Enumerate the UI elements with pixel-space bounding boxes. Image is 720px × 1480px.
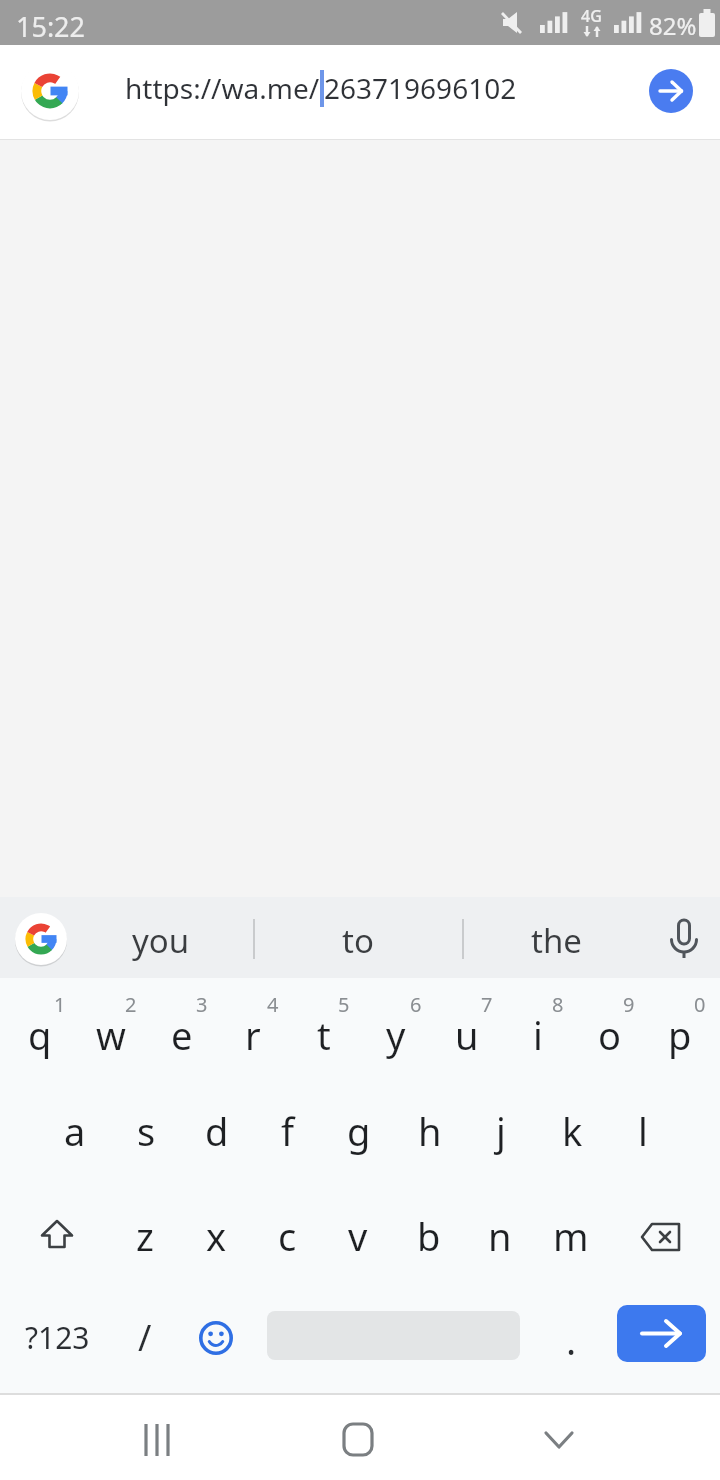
button[interactable]: d	[183, 1093, 251, 1169]
button[interactable]: g	[325, 1093, 393, 1169]
button[interactable]: .	[537, 1302, 605, 1378]
button[interactable]: f	[254, 1093, 322, 1169]
staticText: a	[64, 1105, 86, 1157]
staticText: 2	[125, 991, 137, 1018]
button[interactable]	[338, 1421, 378, 1461]
staticText: 263719696102	[324, 69, 517, 107]
staticText: the	[531, 918, 582, 963]
button[interactable]: p	[646, 997, 714, 1073]
staticText: 4G	[581, 5, 602, 27]
button[interactable]: x	[182, 1198, 250, 1274]
staticText: k	[562, 1105, 583, 1157]
staticText: p	[668, 1009, 692, 1061]
staticText: 0	[694, 991, 706, 1018]
button[interactable]: to	[310, 907, 406, 973]
button[interactable]: the	[492, 907, 621, 973]
button[interactable]: k	[538, 1093, 606, 1169]
staticText: s	[137, 1105, 156, 1157]
staticText: g	[347, 1105, 371, 1157]
staticText: .	[566, 1314, 577, 1366]
button[interactable]	[39, 1219, 75, 1255]
staticText: b	[417, 1210, 441, 1262]
staticText: u	[455, 1009, 479, 1061]
staticText: 4	[267, 991, 279, 1018]
staticText: w	[96, 1009, 126, 1061]
staticText: 3	[196, 991, 208, 1018]
button[interactable]: b	[395, 1198, 463, 1274]
button[interactable]: s	[112, 1093, 180, 1169]
staticText: v	[348, 1210, 368, 1262]
button[interactable]: m	[537, 1198, 605, 1274]
staticText: z	[136, 1210, 154, 1262]
staticText: r	[245, 1009, 261, 1061]
staticText: 15:22	[16, 8, 86, 45]
staticText: l	[638, 1105, 648, 1157]
button[interactable]	[649, 69, 693, 113]
staticText: y	[386, 1009, 406, 1061]
button[interactable]: l	[609, 1093, 677, 1169]
button[interactable]: e	[148, 997, 216, 1073]
staticText: e	[171, 1009, 193, 1061]
button[interactable]: i	[504, 997, 572, 1073]
staticText: 9	[623, 991, 635, 1018]
button[interactable]: a	[41, 1093, 109, 1169]
button[interactable]: r	[219, 997, 287, 1073]
button[interactable]: you	[96, 907, 225, 973]
staticText: m	[553, 1210, 589, 1262]
staticText: /	[138, 1313, 152, 1362]
staticText: you	[132, 918, 190, 963]
staticText: j	[496, 1105, 506, 1157]
button[interactable]	[137, 1421, 177, 1461]
button[interactable]: t	[290, 997, 358, 1073]
button[interactable]	[198, 1320, 234, 1356]
button[interactable]: n	[466, 1198, 534, 1274]
button[interactable]: y	[362, 997, 430, 1073]
button[interactable]: h	[396, 1093, 464, 1169]
staticText: ?123	[25, 1317, 90, 1358]
button[interactable]	[664, 916, 704, 962]
staticText: 8	[552, 991, 564, 1018]
button[interactable]: ?123	[0, 1307, 132, 1367]
button[interactable]: v	[324, 1198, 392, 1274]
button[interactable]: u	[433, 997, 501, 1073]
staticText: 1	[54, 991, 66, 1018]
button[interactable]	[639, 1222, 683, 1252]
button[interactable]: q	[6, 997, 74, 1073]
button[interactable]: z	[111, 1198, 179, 1274]
button[interactable]: w	[77, 997, 145, 1073]
staticText: n	[488, 1210, 512, 1262]
button[interactable]: o	[575, 997, 643, 1073]
staticText: i	[533, 1009, 543, 1061]
staticText: 7	[481, 991, 493, 1018]
staticText: h	[418, 1105, 442, 1157]
staticText: 6	[410, 991, 422, 1018]
staticText: f	[281, 1105, 295, 1157]
button[interactable]: /	[112, 1301, 178, 1373]
staticText: https://wa.me/	[125, 69, 320, 107]
button[interactable]: c	[253, 1198, 321, 1274]
staticText: 5	[338, 991, 350, 1018]
staticText: c	[278, 1210, 297, 1262]
staticText: x	[206, 1210, 227, 1262]
button[interactable]: j	[467, 1093, 535, 1169]
staticText: q	[28, 1009, 52, 1061]
staticText: t	[317, 1009, 331, 1061]
staticText: 82%	[649, 9, 697, 42]
staticText: d	[205, 1105, 229, 1157]
staticText: to	[342, 918, 374, 963]
staticText: o	[598, 1009, 621, 1061]
button[interactable]	[617, 1305, 706, 1362]
button[interactable]	[539, 1421, 579, 1461]
